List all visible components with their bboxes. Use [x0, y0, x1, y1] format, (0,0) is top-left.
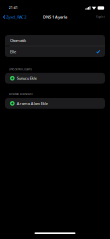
staticText: Zyxel_RAC2 [6, 14, 26, 20]
staticText: DNS 1 Ayarla [43, 14, 67, 20]
staticText: Elle [10, 49, 16, 54]
button[interactable]: Elle [5, 46, 105, 57]
staticText: DNS SUNUCULARI [9, 67, 32, 71]
staticText: Kaydet [96, 15, 105, 19]
staticText: Otomatik [10, 38, 26, 43]
button[interactable]: Arama Alanı Ekle [5, 98, 105, 109]
staticText: Arama Alanı Ekle [17, 101, 48, 106]
button[interactable]: Otomatik [5, 35, 105, 46]
button[interactable]: Zyxel_RAC2 [0, 13, 26, 21]
staticText: 21:41 [9, 6, 18, 10]
button[interactable]: Sunucu Ekle [5, 73, 105, 84]
staticText: ARAMA ALANLARI [9, 93, 33, 96]
button[interactable]: Kaydet [96, 14, 110, 20]
staticText: Sunucu Ekle [17, 76, 37, 81]
